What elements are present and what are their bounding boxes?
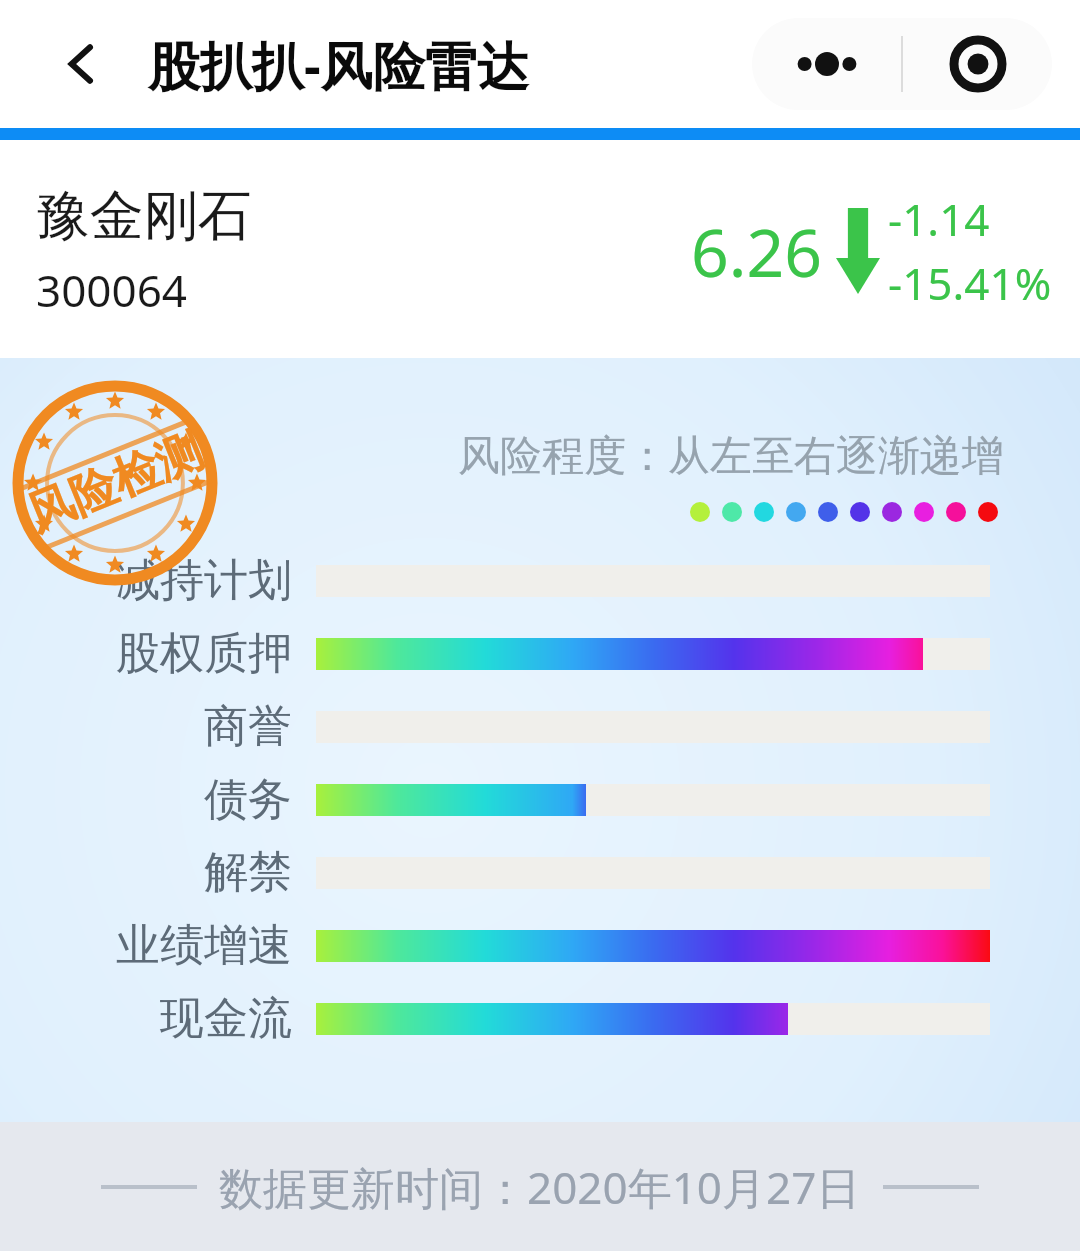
staticText: -15.41% <box>888 253 1052 313</box>
button[interactable]: 解禁 <box>0 836 1080 909</box>
staticText: 风险程度：从左至右逐渐递增 <box>458 430 1004 483</box>
staticText: 股权质押 <box>116 626 292 681</box>
staticText: 300064 <box>36 260 188 320</box>
button[interactable]: Back <box>46 28 118 100</box>
button[interactable]: 业绩增速 <box>0 909 1080 982</box>
button[interactable]: 减持计划 <box>0 544 1080 617</box>
staticText: -1.14 <box>888 189 990 249</box>
button[interactable]: Record <box>903 18 1052 110</box>
staticText: 业绩增速 <box>116 918 292 973</box>
staticText: 减持计划 <box>116 553 292 608</box>
staticText: 债务 <box>204 772 292 827</box>
button[interactable]: 现金流 <box>0 982 1080 1055</box>
button[interactable]: 债务 <box>0 763 1080 836</box>
button[interactable]: More <box>752 18 901 110</box>
staticText: 豫金刚石 <box>36 182 252 250</box>
staticText: 风险检测 <box>19 422 211 544</box>
staticText: 解禁 <box>204 845 292 900</box>
staticText: 现金流 <box>160 991 292 1046</box>
staticText: 数据更新时间：2020年10月27日 <box>219 1157 861 1217</box>
staticText: 6.26 <box>691 206 822 296</box>
staticText: 商誉 <box>204 699 292 754</box>
button[interactable]: 股权质押 <box>0 617 1080 690</box>
button[interactable]: 商誉 <box>0 690 1080 763</box>
staticText: 股扒扒-风险雷达 <box>148 29 529 100</box>
